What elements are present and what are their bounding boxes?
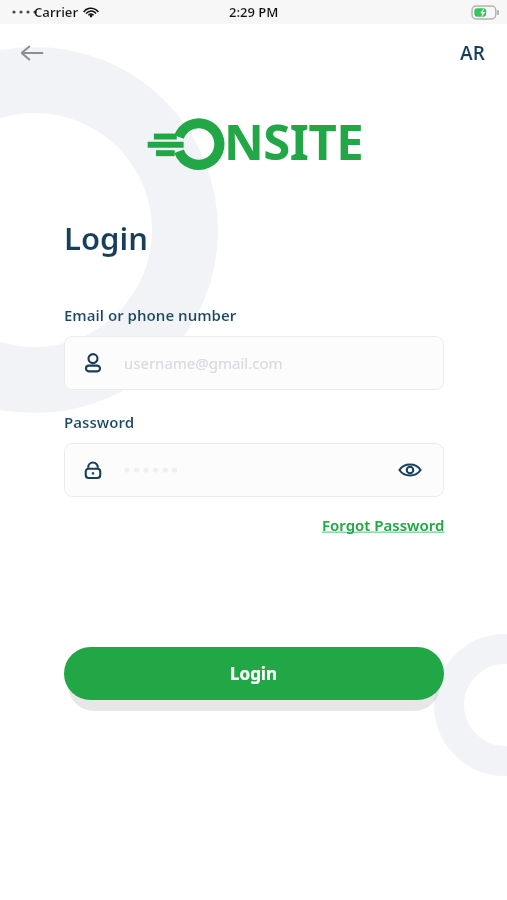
button[interactable]: Forgot Password bbox=[318, 511, 449, 539]
staticText: Login bbox=[64, 217, 149, 259]
button[interactable]: Back bbox=[10, 31, 54, 75]
staticText: Login bbox=[230, 662, 278, 685]
button[interactable]: AR bbox=[450, 34, 495, 72]
staticText: Email or phone number bbox=[64, 305, 237, 325]
staticText: 2:29 PM bbox=[229, 3, 279, 21]
staticText: NSITE bbox=[224, 108, 364, 175]
staticText: Password bbox=[64, 412, 135, 432]
staticText: username@gmail.com bbox=[124, 353, 283, 373]
button[interactable]: Show password bbox=[64, 443, 444, 497]
staticText: Carrier bbox=[34, 3, 79, 21]
staticText: Forgot Password bbox=[322, 515, 445, 535]
button[interactable]: username@gmail.com bbox=[64, 336, 444, 390]
staticText: AR bbox=[460, 40, 485, 66]
button[interactable]: Show password bbox=[394, 454, 426, 486]
button[interactable]: Login bbox=[64, 647, 444, 700]
